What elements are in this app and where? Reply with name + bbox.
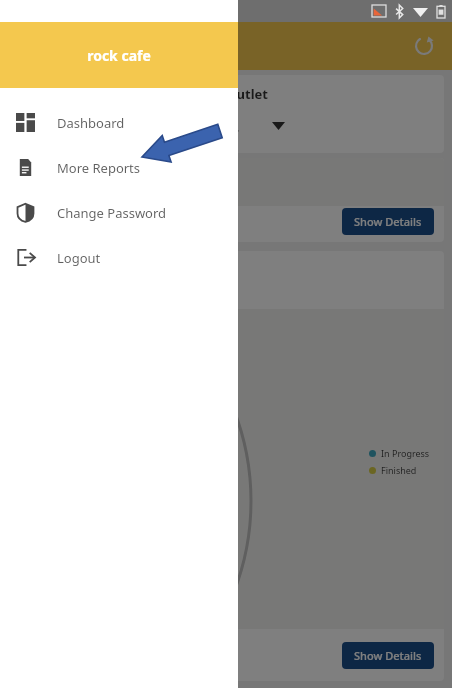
button[interactable]: Show Details xyxy=(342,208,434,235)
staticText: All Outl… xyxy=(168,114,240,137)
staticText: Show Details xyxy=(354,214,422,229)
staticText: Change Password xyxy=(57,204,167,222)
staticText: More Reports xyxy=(57,159,141,177)
button[interactable]: Change Password xyxy=(0,190,238,235)
button[interactable]: All Outl… xyxy=(8,114,444,137)
staticText: Select Outlet xyxy=(184,85,268,103)
button[interactable]: Dashboard xyxy=(0,100,238,145)
staticText: rock cafe xyxy=(87,46,151,65)
button[interactable]: Refresh xyxy=(410,32,438,60)
staticText: In Progress xyxy=(381,447,430,459)
button[interactable]: More Reports xyxy=(0,145,238,190)
staticText: Finished xyxy=(381,464,417,476)
staticText: Logout xyxy=(57,249,101,267)
button[interactable]: Logout xyxy=(0,235,238,280)
button[interactable]: Show Details xyxy=(342,642,434,669)
staticText: Show Details xyxy=(354,648,422,663)
staticText: Dashboard xyxy=(57,114,125,132)
